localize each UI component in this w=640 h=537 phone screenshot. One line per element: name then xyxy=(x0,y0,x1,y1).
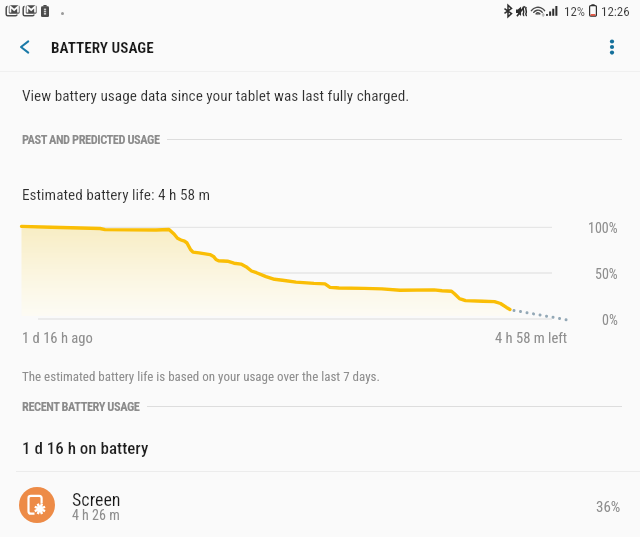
staticText: Screen xyxy=(72,489,121,510)
staticText: 36% xyxy=(596,498,621,516)
staticText: The estimated battery life is based on y… xyxy=(22,369,380,384)
staticText: 4 h 58 m left xyxy=(495,329,568,346)
button[interactable]: Navigate up xyxy=(2,28,46,71)
staticText: 1 d 16 h on battery xyxy=(22,438,149,458)
staticText: 1 d 16 h ago xyxy=(22,329,93,346)
staticText: 4 h 26 m xyxy=(72,507,120,523)
staticText: PAST AND PREDICTED USAGE xyxy=(22,132,160,147)
staticText: 50% xyxy=(595,266,618,282)
staticText: Estimated battery life: 4 h 58 m xyxy=(22,186,211,204)
staticText: View battery usage data since your table… xyxy=(22,87,410,105)
staticText: 0% xyxy=(602,312,618,328)
button[interactable]: More options xyxy=(596,28,640,71)
button[interactable]: Screen xyxy=(0,472,640,537)
staticText: 100% xyxy=(588,220,618,236)
staticText: RECENT BATTERY USAGE xyxy=(22,399,140,414)
staticText: 12% xyxy=(564,4,586,19)
staticText: 12:26 xyxy=(601,4,630,19)
staticText: BATTERY USAGE xyxy=(51,39,154,57)
